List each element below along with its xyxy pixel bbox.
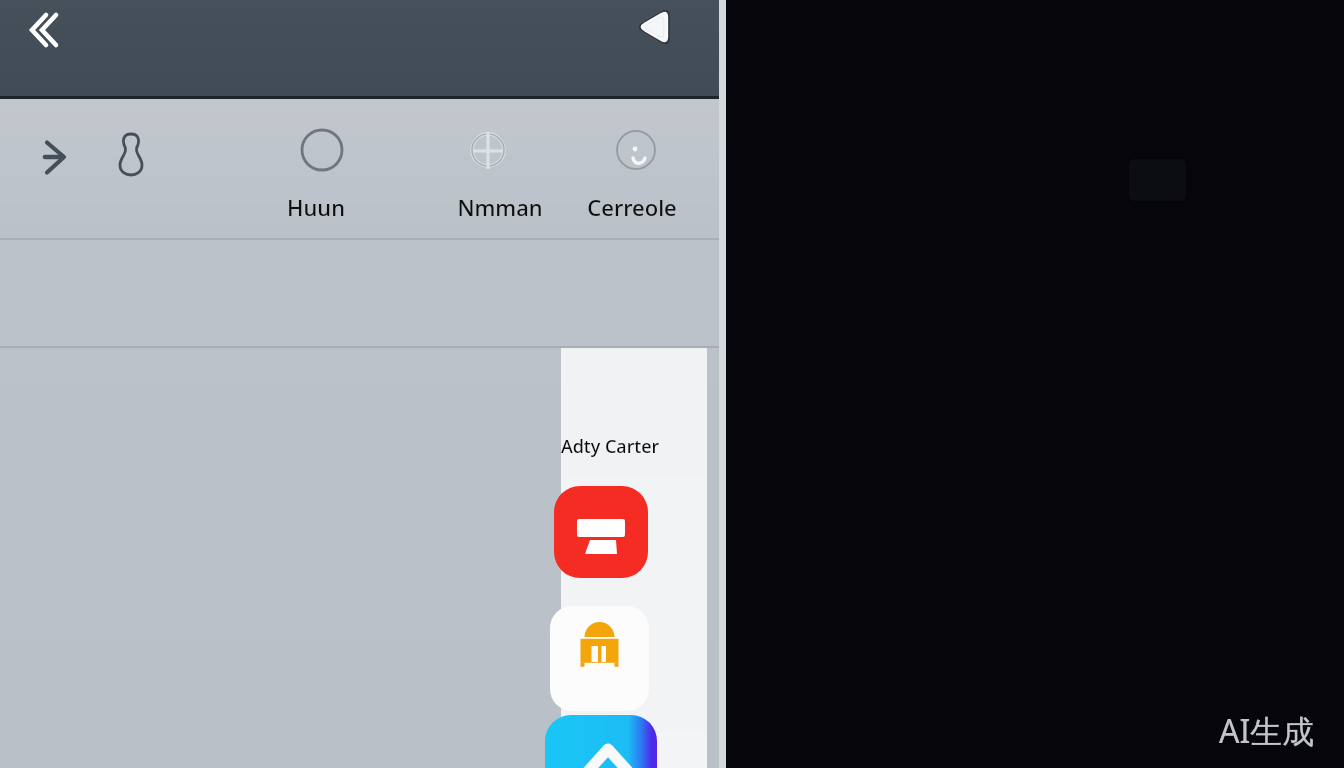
button[interactable]: Red app (554, 486, 648, 578)
staticText: Nmman (435, 192, 565, 222)
button[interactable]: Blue app (545, 715, 657, 768)
staticText: Adty Carter (537, 434, 683, 459)
button[interactable]: Shape tool (103, 126, 159, 182)
button[interactable]: Orange app (550, 606, 649, 711)
staticText: Huun (251, 192, 381, 222)
button[interactable]: Huun (257, 112, 387, 239)
button[interactable]: Back (15, 2, 71, 58)
button[interactable]: Forward (27, 129, 83, 185)
staticText: AI生成 (1219, 709, 1315, 753)
button[interactable]: Nmman (423, 112, 553, 239)
button[interactable]: Previous (626, 0, 682, 56)
staticText: Cerreole (567, 192, 697, 222)
button[interactable]: Cerreole (571, 112, 701, 239)
